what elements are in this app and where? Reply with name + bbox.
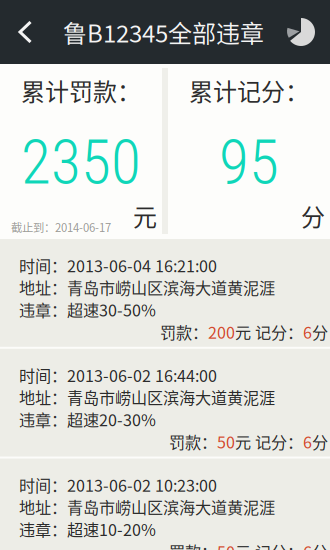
button[interactable]: Statistics chart bbox=[271, 10, 330, 54]
staticText: 6 bbox=[303, 430, 312, 452]
staticText: 累计罚款： bbox=[21, 73, 141, 108]
staticText: 2350 bbox=[21, 127, 141, 198]
staticText: 截止到：2014-06-17 bbox=[11, 219, 111, 235]
staticText: 违章：超速10-20% bbox=[19, 518, 156, 540]
staticText: 6 bbox=[303, 540, 312, 550]
staticText: 元 记分： bbox=[235, 430, 303, 452]
button[interactable]: 时间：2013-06-04 16:21:00 bbox=[0, 239, 330, 347]
staticText: 分 bbox=[312, 321, 328, 343]
staticText: 6 bbox=[303, 321, 312, 343]
staticText: 地址：青岛市崂山区滨海大道黄泥涯 bbox=[19, 496, 275, 518]
button[interactable]: 时间：2013-06-02 16:44:00 bbox=[0, 349, 330, 457]
staticText: 累计记分： bbox=[189, 73, 309, 108]
staticText: 违章：超速20-30% bbox=[19, 408, 156, 430]
staticText: 鲁B12345全部违章 bbox=[63, 15, 264, 49]
staticText: 罚款： bbox=[160, 321, 208, 343]
staticText: 时间：2013-06-04 16:21:00 bbox=[19, 254, 217, 276]
staticText: 元 bbox=[133, 198, 157, 233]
staticText: 时间：2013-06-02 10:23:00 bbox=[19, 473, 217, 496]
staticText: 分 bbox=[301, 198, 325, 233]
staticText: 罚款： bbox=[169, 540, 217, 550]
button[interactable]: 时间：2013-06-02 10:23:00 bbox=[0, 458, 330, 550]
staticText: 时间：2013-06-02 16:44:00 bbox=[19, 364, 217, 386]
staticText: 违章：超速30-50% bbox=[19, 298, 156, 321]
staticText: 地址：青岛市崂山区滨海大道黄泥涯 bbox=[19, 386, 275, 408]
staticText: 200 bbox=[208, 321, 235, 343]
staticText: 元 记分： bbox=[235, 321, 303, 343]
staticText: 95 bbox=[219, 127, 279, 198]
button[interactable]: Back bbox=[0, 10, 63, 54]
staticText: 分 bbox=[312, 540, 328, 550]
staticText: 地址：青岛市崂山区滨海大道黄泥涯 bbox=[19, 276, 275, 298]
staticText: 50 bbox=[217, 540, 235, 550]
staticText: 分 bbox=[312, 430, 328, 452]
staticText: 元 记分： bbox=[235, 540, 303, 550]
staticText: 50 bbox=[217, 430, 235, 452]
staticText: 罚款： bbox=[169, 430, 217, 452]
